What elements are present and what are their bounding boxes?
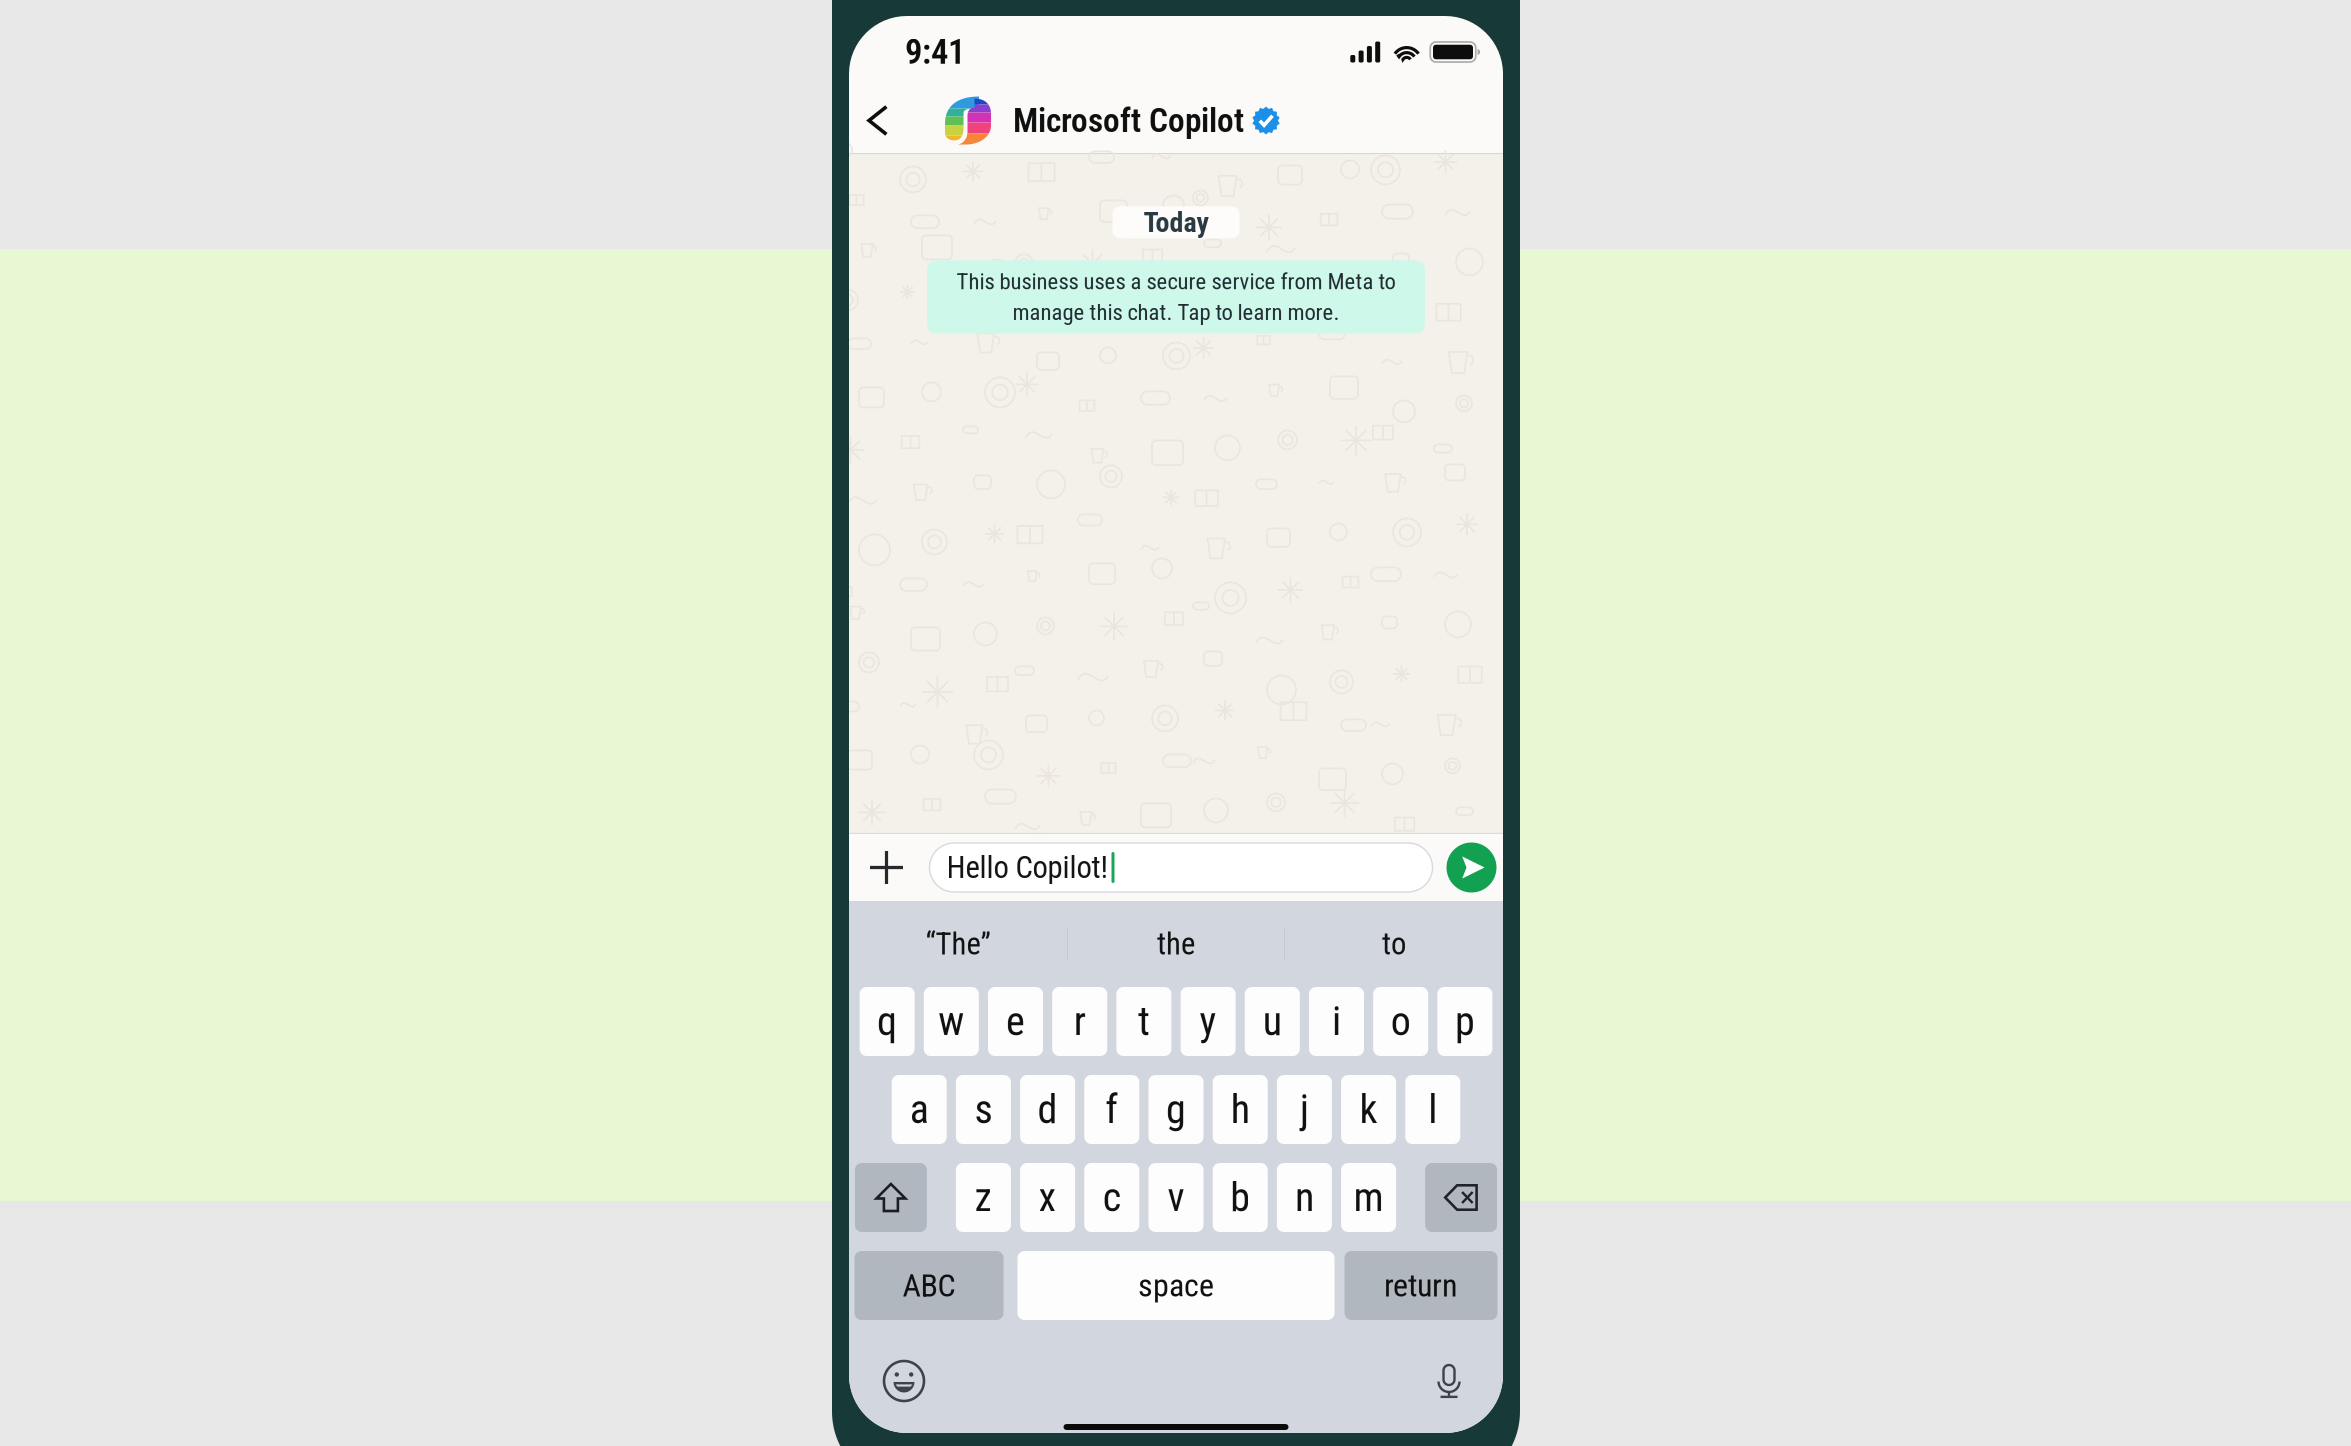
staticText: f bbox=[1105, 1086, 1118, 1133]
staticText: r bbox=[1074, 998, 1086, 1045]
button[interactable]: to bbox=[1285, 901, 1503, 987]
staticText: Today bbox=[1143, 206, 1208, 239]
button[interactable]: b bbox=[1213, 1163, 1268, 1232]
button[interactable]: p bbox=[1437, 987, 1492, 1056]
button[interactable]: v bbox=[1148, 1163, 1203, 1232]
staticText: c bbox=[1103, 1174, 1121, 1221]
staticText: m bbox=[1354, 1174, 1384, 1221]
button[interactable]: ABC bbox=[854, 1251, 1003, 1320]
staticText: g bbox=[1166, 1086, 1186, 1133]
staticText: w bbox=[938, 998, 964, 1045]
button[interactable]: r bbox=[1052, 987, 1107, 1056]
button[interactable]: z bbox=[956, 1163, 1011, 1232]
staticText: l bbox=[1428, 1086, 1437, 1133]
button[interactable]: s bbox=[956, 1075, 1011, 1144]
button[interactable]: Attach bbox=[855, 834, 917, 901]
button[interactable]: “The” bbox=[849, 901, 1067, 987]
button[interactable]: k bbox=[1341, 1075, 1396, 1144]
button[interactable]: Delete bbox=[1425, 1163, 1497, 1232]
button[interactable]: f bbox=[1084, 1075, 1139, 1144]
button[interactable]: n bbox=[1277, 1163, 1332, 1232]
button[interactable]: o bbox=[1373, 987, 1428, 1056]
button[interactable]: y bbox=[1181, 987, 1236, 1056]
staticText: z bbox=[974, 1174, 992, 1221]
button[interactable]: t bbox=[1116, 987, 1171, 1056]
button[interactable]: h bbox=[1213, 1075, 1268, 1144]
staticText: “The” bbox=[925, 926, 990, 962]
button[interactable]: m bbox=[1341, 1163, 1396, 1232]
staticText: o bbox=[1391, 998, 1411, 1045]
button[interactable]: space bbox=[1017, 1251, 1334, 1320]
staticText: x bbox=[1039, 1174, 1057, 1221]
staticText: Hello Copilot! bbox=[946, 849, 1108, 885]
staticText: i bbox=[1332, 998, 1341, 1045]
button[interactable]: d bbox=[1020, 1075, 1075, 1144]
staticText: d bbox=[1038, 1086, 1058, 1133]
button[interactable]: Send bbox=[1446, 842, 1496, 892]
button[interactable]: This business uses a secure service from… bbox=[927, 260, 1425, 333]
staticText: u bbox=[1263, 998, 1282, 1045]
staticText: Microsoft Copilot bbox=[1013, 101, 1244, 140]
staticText: j bbox=[1300, 1086, 1309, 1133]
staticText: t bbox=[1138, 998, 1150, 1045]
staticText: h bbox=[1231, 1086, 1250, 1133]
staticText: space bbox=[1138, 1267, 1214, 1304]
button[interactable]: return bbox=[1344, 1251, 1497, 1320]
staticText: the bbox=[1157, 926, 1195, 962]
staticText: a bbox=[910, 1086, 929, 1133]
button[interactable]: j bbox=[1277, 1075, 1332, 1144]
button[interactable]: e bbox=[988, 987, 1043, 1056]
button[interactable]: x bbox=[1020, 1163, 1075, 1232]
button[interactable]: Shift bbox=[855, 1163, 927, 1232]
button[interactable]: i bbox=[1309, 987, 1364, 1056]
staticText: b bbox=[1230, 1174, 1250, 1221]
staticText: e bbox=[1006, 998, 1025, 1045]
staticText: y bbox=[1200, 998, 1217, 1045]
button[interactable]: w bbox=[924, 987, 979, 1056]
staticText: to bbox=[1382, 926, 1406, 962]
button[interactable]: g bbox=[1148, 1075, 1203, 1144]
staticText: s bbox=[974, 1086, 992, 1133]
staticText: v bbox=[1167, 1174, 1184, 1221]
staticText: manage this chat. Tap to learn more. bbox=[1012, 299, 1339, 325]
staticText: p bbox=[1455, 998, 1475, 1045]
button[interactable]: a bbox=[892, 1075, 947, 1144]
button[interactable]: l bbox=[1405, 1075, 1460, 1144]
button[interactable]: q bbox=[860, 987, 915, 1056]
staticText: ABC bbox=[902, 1267, 955, 1304]
staticText: This business uses a secure service from… bbox=[956, 268, 1395, 295]
button[interactable]: Dictate bbox=[1425, 1357, 1473, 1405]
button[interactable]: Back bbox=[849, 88, 907, 153]
staticText: q bbox=[877, 998, 897, 1045]
button[interactable]: c bbox=[1084, 1163, 1139, 1232]
staticText: k bbox=[1360, 1086, 1378, 1133]
button[interactable]: the bbox=[1068, 901, 1284, 987]
staticText: n bbox=[1295, 1174, 1314, 1221]
button[interactable]: u bbox=[1245, 987, 1300, 1056]
button[interactable]: Emoji bbox=[880, 1357, 928, 1405]
staticText: return bbox=[1384, 1267, 1458, 1304]
staticText: 9:41 bbox=[905, 32, 965, 72]
